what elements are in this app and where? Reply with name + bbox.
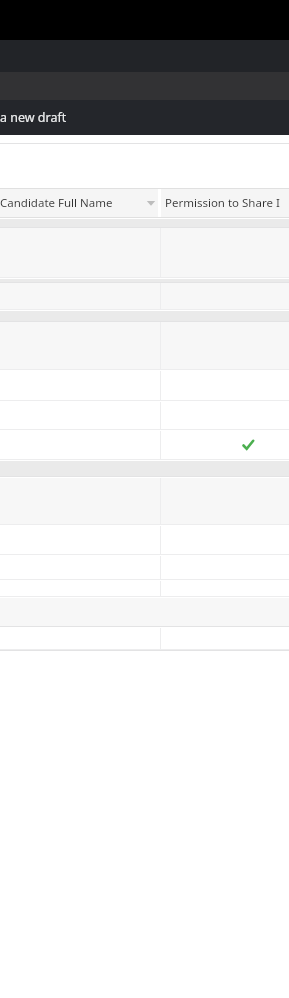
button[interactable]: Sort Candidate Full Name bbox=[0, 188, 160, 218]
staticText: a new draft bbox=[0, 109, 67, 126]
staticText: Permission to Share I bbox=[165, 195, 280, 211]
button[interactable]: Permission to Share I bbox=[165, 188, 289, 218]
button[interactable]: a new draft bbox=[0, 100, 289, 135]
staticText: Candidate Full Name bbox=[0, 195, 113, 211]
button[interactable]: Candidate Full Name bbox=[0, 188, 160, 218]
